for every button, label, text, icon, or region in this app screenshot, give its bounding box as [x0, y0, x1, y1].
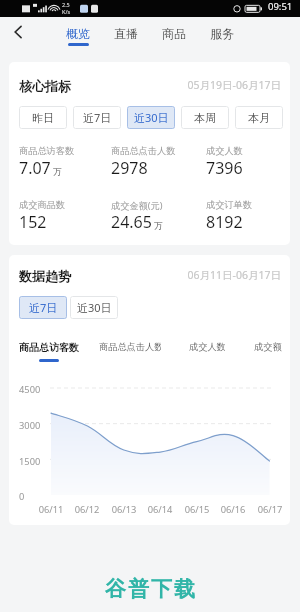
staticText: 4500 [19, 383, 41, 396]
staticText: 24.65 [111, 211, 152, 233]
button[interactable]: 近30日 [127, 106, 175, 129]
staticText: 本月 [248, 111, 270, 125]
staticText: 09:51 [268, 0, 293, 13]
staticText: 商品总访客数 [19, 341, 79, 354]
staticText: 成交商品数 [19, 199, 65, 211]
button[interactable]: 返回 [8, 17, 28, 47]
staticText: 2.5 [62, 1, 70, 8]
button[interactable]: 昨日 [19, 106, 67, 129]
staticText: 近7日 [83, 110, 112, 125]
button[interactable]: 成交人数 [189, 341, 225, 361]
staticText: 商品总访客数 [19, 145, 75, 157]
staticText: 0 [19, 490, 25, 503]
staticText: 3000 [19, 419, 41, 432]
button[interactable]: 本周 [181, 106, 229, 129]
button[interactable]: 近7日 [19, 296, 67, 319]
staticText: K/s [62, 8, 71, 15]
staticText: 152 [19, 211, 47, 233]
staticText: 近30日 [134, 110, 169, 125]
staticText: 概览 [66, 26, 90, 41]
staticText: 06/17 [254, 503, 286, 516]
staticText: 2978 [111, 157, 148, 179]
staticText: 1500 [19, 455, 41, 468]
staticText: 本周 [194, 111, 216, 125]
staticText: 成交人数 [206, 145, 243, 157]
staticText: 成交额 [254, 341, 282, 353]
staticText: 06/11 [35, 503, 67, 516]
button[interactable]: 服务 [198, 17, 246, 53]
staticText: 直播 [114, 26, 138, 41]
staticText: 服务 [210, 26, 234, 41]
staticText: 成交人数 [189, 341, 225, 353]
staticText: 06/16 [217, 503, 249, 516]
staticText: 06/13 [108, 503, 140, 516]
staticText: 数据趋势 [19, 268, 71, 284]
staticText: 7.07 [19, 157, 51, 179]
staticText: 万 [154, 220, 163, 231]
staticText: 06/15 [181, 503, 213, 516]
staticText: 商品总点击人数 [99, 341, 161, 353]
staticText: 05月19日-06月17日 [19, 78, 281, 92]
staticText: 06月11日-06月17日 [19, 268, 281, 282]
staticText: 8192 [206, 211, 243, 233]
button[interactable]: 近7日 [73, 106, 121, 129]
button[interactable]: 商品总访客数 [19, 341, 79, 362]
staticText: 商品 [162, 26, 186, 41]
button[interactable]: 商品 [150, 17, 198, 53]
button[interactable]: 概览 [54, 17, 102, 53]
button[interactable]: 近30日 [70, 296, 118, 319]
staticText: 万 [53, 166, 62, 177]
staticText: 7396 [206, 157, 243, 179]
staticText: 昨日 [32, 111, 54, 125]
staticText: 成交金额(元) [111, 199, 163, 212]
staticText: 06/12 [71, 503, 103, 516]
staticText: 近30日 [77, 300, 112, 315]
staticText: 商品总点击人数 [111, 145, 176, 157]
button[interactable]: 成交额 [253, 341, 283, 361]
staticText: 谷普下载 [104, 576, 196, 602]
staticText: 核心指标 [19, 78, 71, 94]
staticText: 成交订单数 [206, 199, 252, 211]
staticText: 近7日 [29, 300, 58, 315]
staticText: 06/14 [144, 503, 176, 516]
button[interactable]: 直播 [102, 17, 150, 53]
button[interactable]: 本月 [235, 106, 283, 129]
button[interactable]: 商品总点击人数 [99, 341, 161, 361]
